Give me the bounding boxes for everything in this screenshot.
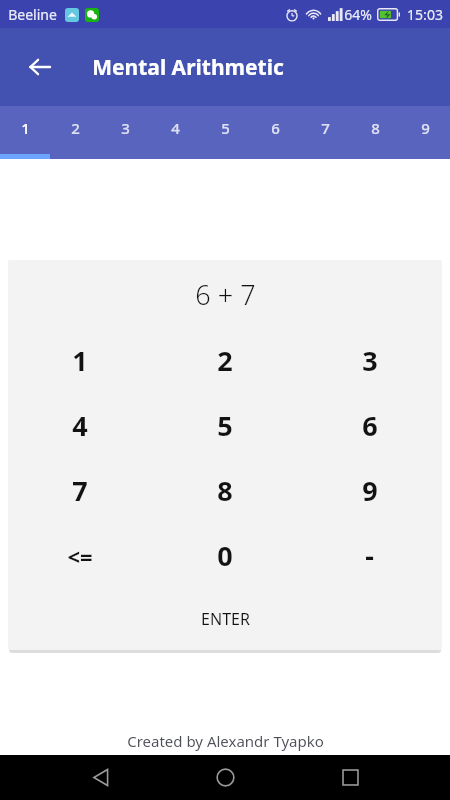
staticText: ENTER <box>201 608 250 630</box>
button[interactable]: 1 <box>8 328 152 393</box>
staticText: 4 <box>171 118 180 138</box>
staticText: 1 <box>72 342 88 379</box>
staticText: 7 <box>321 118 330 138</box>
staticText: 8 <box>371 118 380 138</box>
staticText: 4 <box>72 407 88 444</box>
button[interactable]: 1 <box>0 106 50 159</box>
button[interactable]: 3 <box>100 106 150 159</box>
staticText: 5 <box>217 407 233 444</box>
staticText: 15:03 <box>407 5 443 24</box>
button[interactable]: 9 <box>400 106 450 159</box>
button[interactable]: 9 <box>297 458 442 523</box>
button[interactable]: 4 <box>150 106 200 159</box>
staticText: 6 <box>362 407 378 444</box>
staticText: 5 <box>221 118 230 138</box>
staticText: - <box>365 537 374 574</box>
staticText: Mental Arithmetic <box>92 53 284 82</box>
button[interactable]: 2 <box>152 328 297 393</box>
staticText: 6 + 7 <box>195 276 256 313</box>
button[interactable]: 3 <box>297 328 442 393</box>
button[interactable]: 8 <box>350 106 400 159</box>
staticText: 3 <box>362 342 378 379</box>
staticText: 8 <box>217 472 233 509</box>
button[interactable]: ENTER <box>8 588 442 650</box>
staticText: 0 <box>217 537 233 574</box>
button[interactable]: 2 <box>50 106 100 159</box>
button[interactable]: 5 <box>152 393 297 458</box>
button[interactable]: 6 <box>297 393 442 458</box>
button[interactable]: 7 <box>300 106 350 159</box>
staticText: Created by Alexandr Tyapko <box>127 731 324 751</box>
staticText: 6 <box>271 118 280 138</box>
staticText: 1 <box>21 118 30 138</box>
button[interactable]: Home <box>201 755 249 800</box>
staticText: 3 <box>121 118 130 138</box>
button[interactable]: 4 <box>8 393 152 458</box>
button[interactable]: Recent apps <box>326 755 374 800</box>
staticText: 2 <box>217 342 233 379</box>
staticText: 9 <box>421 118 430 138</box>
button[interactable]: Back <box>77 755 125 800</box>
staticText: Beeline <box>8 5 57 24</box>
button[interactable]: - <box>297 523 442 588</box>
button[interactable]: <= <box>8 523 152 588</box>
staticText: 9 <box>362 472 378 509</box>
button[interactable]: 5 <box>200 106 250 159</box>
button[interactable]: Back <box>16 43 64 91</box>
button[interactable]: 6 <box>250 106 300 159</box>
staticText: 7 <box>72 472 88 509</box>
button[interactable]: 8 <box>152 458 297 523</box>
button[interactable]: 0 <box>152 523 297 588</box>
staticText: 64% <box>344 5 372 24</box>
staticText: <= <box>67 541 93 571</box>
button[interactable]: 7 <box>8 458 152 523</box>
staticText: 2 <box>71 118 80 138</box>
